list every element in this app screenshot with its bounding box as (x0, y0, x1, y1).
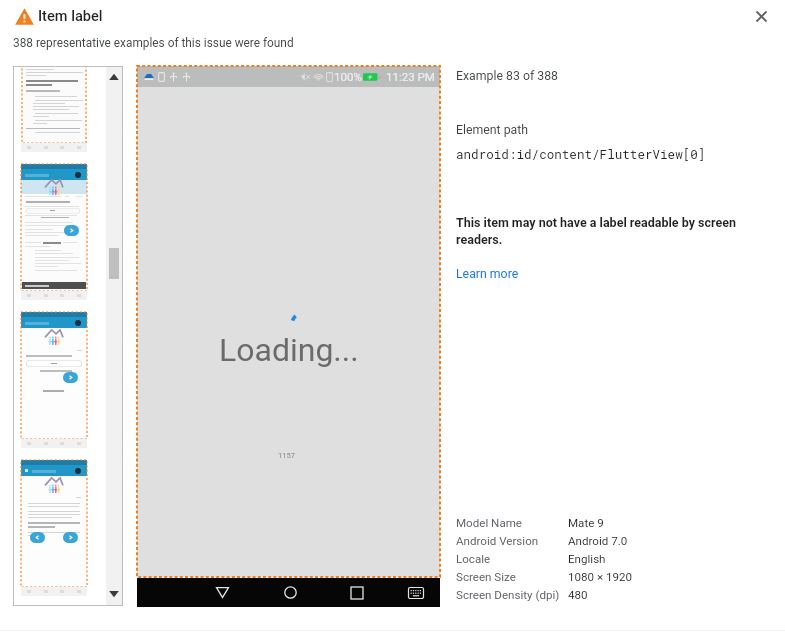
staticText: Screen Density (dpi) (456, 588, 560, 602)
button[interactable]: Keyboard (401, 578, 431, 607)
button[interactable]: Back (207, 578, 237, 607)
staticText: Android 7.0 (568, 534, 628, 548)
staticText: 11:23 PM (386, 70, 435, 83)
staticText: android:id/content/FlutterView[0] (456, 146, 706, 163)
button[interactable]: Home (275, 578, 305, 607)
staticText: Mate 9 (568, 516, 604, 530)
staticText: 480 (568, 588, 588, 602)
staticText: Item label (38, 7, 103, 24)
staticText: Locale (456, 552, 491, 566)
button[interactable]: Learn more (456, 267, 519, 281)
staticText: 388 representative examples of this issu… (13, 36, 294, 50)
staticText: Example 83 of 388 (456, 69, 558, 83)
staticText: Loading... (219, 331, 359, 369)
staticText: English (568, 552, 606, 566)
staticText: Element path (456, 123, 529, 137)
staticText: Learn more (456, 267, 519, 281)
staticText: Screen Size (456, 570, 516, 584)
button[interactable]: Recents (342, 578, 372, 607)
staticText: Android Version (456, 534, 539, 548)
button[interactable]: Close (749, 4, 773, 28)
staticText: Model Name (456, 516, 523, 530)
staticText: 100% (334, 70, 362, 83)
staticText: 1157 (278, 451, 295, 460)
staticText: 1080 × 1920 (568, 570, 633, 584)
staticText: This item may not have a label readable … (456, 215, 744, 248)
